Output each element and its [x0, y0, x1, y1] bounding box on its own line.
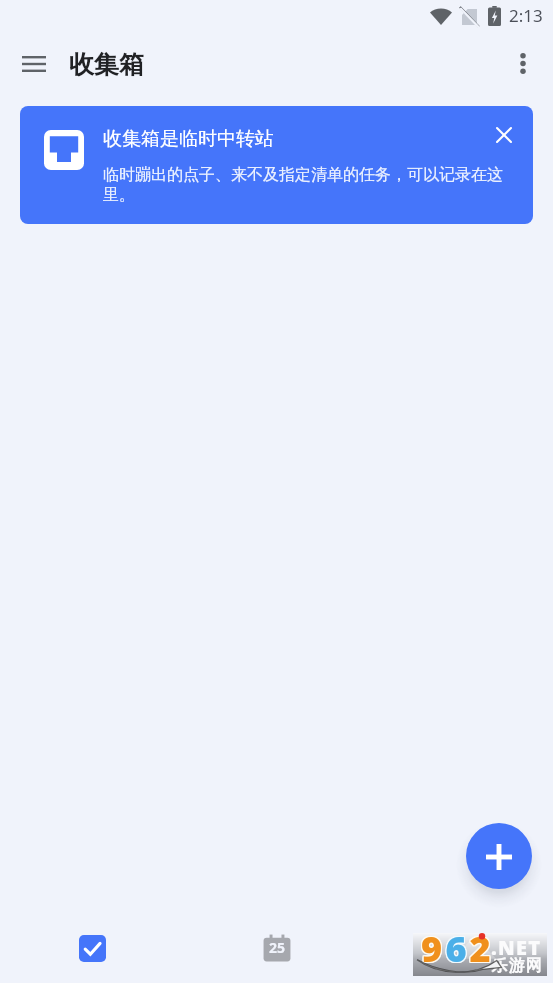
staticText: 6 — [445, 923, 469, 966]
staticText: 乐游网 — [491, 956, 542, 976]
staticText: 9 — [419, 923, 444, 966]
staticText: 9 — [420, 924, 445, 967]
staticText: 6 — [444, 925, 468, 968]
staticText: 收集箱是临时中转站 — [103, 127, 274, 151]
staticText: 2 — [468, 923, 492, 966]
staticText: 9 — [420, 925, 445, 968]
staticText: 6 — [443, 925, 467, 968]
button[interactable]: More options — [500, 40, 546, 86]
staticText: .NET — [491, 934, 542, 961]
button[interactable]: Menu — [11, 41, 57, 87]
button[interactable]: Close — [484, 115, 524, 155]
staticText: 6 — [443, 923, 467, 966]
staticText: 9 — [419, 925, 444, 968]
staticText: 6 — [444, 923, 468, 966]
staticText: 9 — [418, 924, 443, 967]
staticText: 2 — [467, 925, 491, 968]
staticText: 2 — [468, 925, 492, 968]
staticText: 收集箱 — [69, 49, 144, 80]
staticText: 2 — [467, 923, 491, 966]
staticText: 9 — [418, 925, 443, 968]
staticText: 6 — [444, 924, 468, 967]
staticText: 临时蹦出的点子、来不及指定清单的任务，可以记录在这里。 — [103, 165, 512, 205]
button[interactable]: Profile — [369, 913, 553, 983]
staticText: 9 — [420, 923, 445, 966]
staticText: 6 — [443, 924, 467, 967]
staticText: 6 — [445, 924, 469, 967]
staticText: 2 — [469, 925, 493, 968]
staticText: 25 — [269, 938, 286, 957]
staticText: 6 — [445, 925, 469, 968]
staticText: 2:13 — [509, 4, 543, 27]
staticText: 2 — [469, 923, 493, 966]
button[interactable]: Calendar — [185, 913, 369, 983]
staticText: 2 — [467, 924, 491, 967]
staticText: 9 — [419, 924, 444, 967]
button[interactable]: 收集箱是临时中转站 — [20, 106, 533, 224]
staticText: 2 — [469, 924, 493, 967]
staticText: 9 — [418, 923, 443, 966]
button[interactable]: Add task — [466, 823, 532, 889]
staticText: 2 — [468, 924, 492, 967]
button[interactable]: Tasks — [0, 913, 185, 983]
